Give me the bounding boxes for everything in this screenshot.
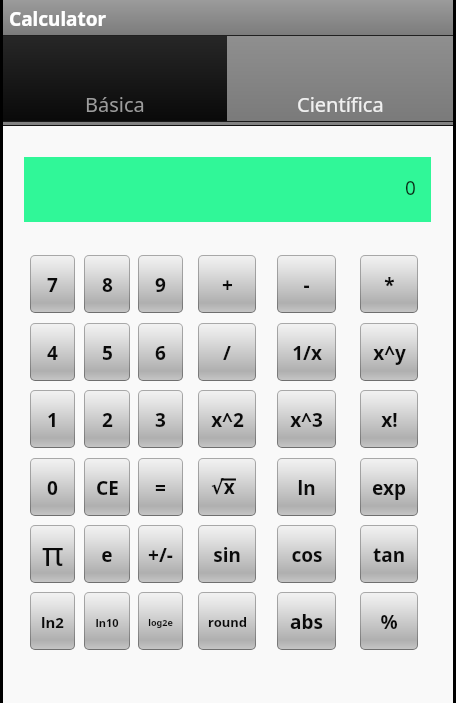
button[interactable]: CE: [85, 459, 129, 515]
button[interactable]: exp: [361, 459, 417, 515]
staticText: log2e: [148, 616, 173, 628]
staticText: ln2: [41, 612, 64, 632]
staticText: Calculator: [9, 6, 107, 32]
staticText: 1/x: [292, 340, 322, 366]
staticText: Científica: [297, 91, 384, 118]
button[interactable]: 5: [85, 324, 129, 380]
staticText: CE: [96, 475, 119, 501]
staticText: %: [380, 609, 398, 635]
staticText: 3: [155, 407, 166, 433]
staticText: 1: [47, 407, 58, 433]
staticText: /: [223, 340, 231, 366]
staticText: 6: [155, 340, 166, 366]
button[interactable]: *: [361, 256, 417, 312]
staticText: π: [42, 531, 64, 576]
staticText: x!: [381, 407, 398, 433]
button[interactable]: 0: [31, 459, 74, 515]
staticText: +: [222, 272, 233, 298]
staticText: 9: [155, 272, 166, 298]
staticText: x^y: [373, 340, 406, 366]
button[interactable]: Básica: [3, 36, 227, 122]
button[interactable]: log2e: [139, 593, 182, 649]
button[interactable]: x!: [361, 391, 417, 447]
staticText: 5: [102, 340, 113, 366]
button[interactable]: π: [31, 526, 74, 582]
button[interactable]: =: [139, 459, 182, 515]
button[interactable]: ln2: [31, 593, 74, 649]
button[interactable]: 1: [31, 391, 74, 447]
button[interactable]: tan: [361, 526, 417, 582]
button[interactable]: 6: [139, 324, 182, 380]
button[interactable]: Científica: [227, 36, 453, 122]
button[interactable]: √x: [199, 459, 255, 515]
button[interactable]: x^2: [199, 391, 255, 447]
button[interactable]: sin: [199, 526, 255, 582]
button[interactable]: e: [85, 526, 129, 582]
staticText: sin: [213, 542, 241, 568]
staticText: *: [384, 272, 395, 298]
staticText: cos: [291, 542, 323, 568]
staticText: e: [101, 542, 113, 568]
button[interactable]: 9: [139, 256, 182, 312]
staticText: 2: [102, 407, 113, 433]
button[interactable]: abs: [278, 593, 335, 649]
button[interactable]: x^y: [361, 324, 417, 380]
button[interactable]: ln: [278, 459, 335, 515]
staticText: ln10: [95, 615, 119, 630]
button[interactable]: /: [199, 324, 255, 380]
staticText: exp: [372, 475, 406, 501]
button[interactable]: 1/x: [278, 324, 335, 380]
staticText: =: [155, 475, 166, 501]
staticText: 8: [102, 272, 113, 298]
button[interactable]: 4: [31, 324, 74, 380]
staticText: 4: [47, 340, 58, 366]
button[interactable]: round: [199, 593, 255, 649]
button[interactable]: %: [361, 593, 417, 649]
button[interactable]: 8: [85, 256, 129, 312]
staticText: abs: [290, 609, 323, 635]
button[interactable]: 7: [31, 256, 74, 312]
button[interactable]: -: [278, 256, 335, 312]
button[interactable]: cos: [278, 526, 335, 582]
staticText: tan: [373, 542, 405, 568]
staticText: x^3: [290, 407, 323, 433]
staticText: 0: [47, 475, 58, 501]
button[interactable]: +/-: [139, 526, 182, 582]
staticText: ln: [297, 475, 316, 501]
button[interactable]: x^3: [278, 391, 335, 447]
button[interactable]: 3: [139, 391, 182, 447]
staticText: Básica: [85, 91, 145, 118]
staticText: round: [208, 613, 247, 631]
staticText: x^2: [211, 407, 244, 433]
button[interactable]: 2: [85, 391, 129, 447]
button[interactable]: ln10: [85, 593, 129, 649]
button[interactable]: +: [199, 256, 255, 312]
staticText: √x: [211, 474, 235, 500]
staticText: -: [303, 272, 310, 298]
staticText: 7: [47, 272, 58, 298]
staticText: 0: [405, 175, 416, 201]
staticText: +/-: [148, 542, 173, 568]
